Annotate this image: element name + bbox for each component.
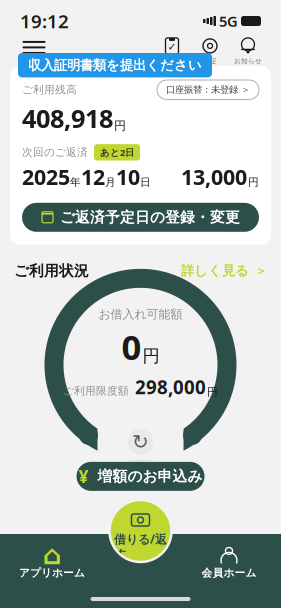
staticText: 口座振替：未登録 ＞ — [166, 84, 250, 95]
staticText: 会員ホーム — [201, 566, 256, 579]
button[interactable]: お知らせ — [229, 37, 267, 65]
button[interactable]: 更新 — [127, 429, 153, 455]
staticText: 円 — [248, 176, 259, 189]
staticText: 0 — [121, 324, 141, 370]
staticText: 日 — [140, 176, 151, 189]
staticText: 書類提出 — [158, 57, 186, 65]
staticText: ＞ — [255, 263, 267, 278]
staticText: 5G — [219, 11, 238, 31]
staticText: あと2日 — [100, 146, 134, 158]
staticText: 設定 — [203, 57, 217, 65]
staticText: ⌂ — [42, 540, 61, 570]
staticText: ✓ — [167, 41, 176, 53]
staticText: ¥ — [78, 465, 88, 488]
button[interactable]: ¥ — [76, 462, 204, 491]
staticText: 次回のご返済 — [22, 146, 88, 159]
staticText: アプリホーム — [19, 566, 85, 579]
button[interactable]: 詳しく見る — [181, 263, 267, 279]
staticText: お知らせ — [234, 57, 262, 65]
button[interactable]: 口座振替：未登録 ＞ — [157, 80, 259, 99]
button[interactable]: ⌂ — [6, 542, 98, 584]
staticText: 月 — [105, 176, 116, 189]
button[interactable]: ご返済予定日の登録・変更 — [22, 203, 259, 232]
staticText: 円 — [142, 345, 159, 367]
staticText: 2025 — [22, 162, 70, 191]
staticText: 増額のお申込み — [97, 467, 202, 485]
staticText: 収入証明書類を提出ください — [28, 57, 202, 73]
button[interactable]: メニュー — [14, 37, 54, 65]
staticText: 借りる/返す — [114, 531, 167, 562]
staticText: 408,918 — [22, 101, 113, 135]
staticText: 詳しく見る — [181, 263, 249, 279]
staticText: ご利用限度額 — [63, 384, 129, 397]
staticText: 13,000 — [181, 162, 247, 191]
staticText: メニュー — [20, 57, 48, 65]
staticText: 12 — [81, 162, 105, 191]
staticText: ご返済予定日の登録・変更 — [60, 208, 240, 226]
staticText: 10 — [116, 162, 140, 191]
button[interactable]: 設定 — [191, 37, 229, 65]
staticText: 円 — [114, 118, 126, 133]
button[interactable]: 借りる/返す — [109, 500, 171, 562]
staticText: ↻ — [132, 430, 149, 453]
button[interactable]: 会員ホーム — [183, 542, 275, 584]
staticText: 年 — [70, 176, 81, 189]
staticText: 円 — [207, 385, 218, 398]
staticText: ご利用残高 — [22, 83, 77, 96]
staticText: お借入れ可能額 — [98, 307, 182, 321]
staticText: ご利用状況 — [14, 262, 89, 280]
staticText: 298,000 — [135, 375, 206, 399]
button[interactable]: 書類提出 — [153, 37, 191, 65]
staticText: 19:12 — [20, 9, 69, 33]
